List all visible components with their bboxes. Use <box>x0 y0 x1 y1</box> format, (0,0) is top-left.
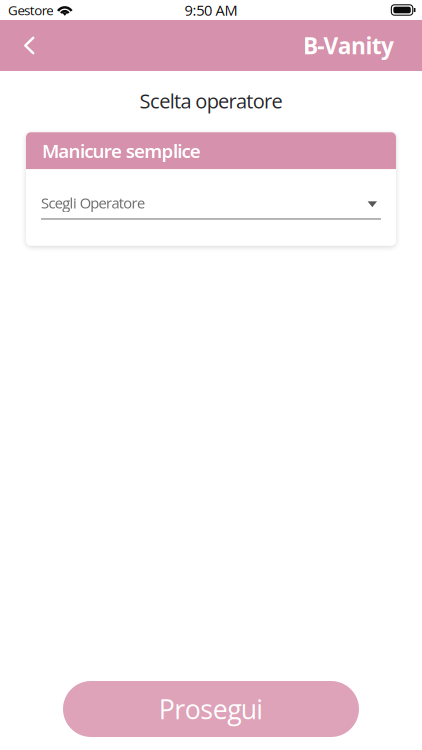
staticText: Scegli Operatore <box>41 193 145 213</box>
button[interactable]: Back <box>0 20 50 71</box>
staticText: 9:50 AM <box>185 0 237 20</box>
button[interactable]: Prosegui <box>63 681 359 737</box>
staticText: Scelta operatore <box>139 87 282 114</box>
staticText: Gestore <box>8 1 53 19</box>
staticText: B-Vanity <box>303 30 394 61</box>
button[interactable]: Scegli Operatore <box>26 169 396 246</box>
staticText: Prosegui <box>159 691 263 727</box>
staticText: Manicure semplice <box>42 138 201 163</box>
button[interactable]: B-Vanity <box>303 20 422 71</box>
